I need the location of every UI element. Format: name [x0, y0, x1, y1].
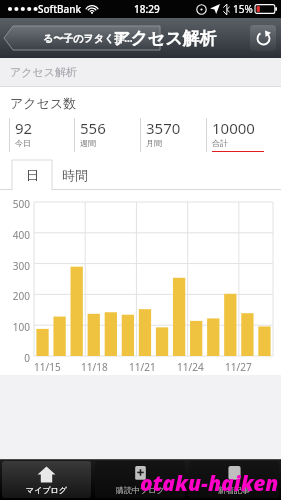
staticText: 18:29	[134, 2, 160, 16]
staticText: る〜子のヲタく拝...	[43, 31, 133, 45]
staticText: アクセス数	[10, 95, 77, 111]
staticText: 10000	[212, 118, 255, 138]
button[interactable]: 購読中ブログ	[95, 461, 185, 498]
button[interactable]: 10000	[212, 118, 264, 152]
staticText: 500	[2, 197, 30, 211]
staticText: 時間	[62, 167, 88, 183]
staticText: 0	[2, 351, 30, 365]
staticText: 400	[2, 228, 30, 242]
staticText: 300	[2, 259, 30, 273]
button[interactable]: マイブログ	[2, 461, 91, 498]
staticText: 11/21	[129, 360, 177, 374]
staticText: 100	[2, 320, 30, 334]
staticText: 日	[26, 167, 39, 183]
staticText: 11/18	[81, 360, 129, 374]
staticText: アクセス解析	[113, 28, 217, 49]
staticText: アクセス解析	[10, 65, 78, 79]
button[interactable]: Refresh	[250, 25, 276, 51]
button[interactable]: 556	[80, 118, 106, 148]
staticText: 合計	[212, 138, 228, 148]
button[interactable]: 日	[12, 160, 52, 190]
button[interactable]: る〜子のヲタく拝...	[4, 26, 164, 50]
button[interactable]: 新着記事	[189, 461, 279, 498]
staticText: 200	[2, 289, 30, 303]
staticText: 週間	[80, 138, 96, 148]
staticText: 15%	[233, 2, 253, 16]
button[interactable]: 時間	[52, 160, 98, 190]
staticText: otaku-haiken	[140, 469, 279, 498]
staticText: 11/27	[225, 360, 273, 374]
staticText: 11/15	[34, 360, 81, 374]
staticText: SoftBank	[38, 2, 82, 16]
button[interactable]: 92	[15, 118, 33, 148]
staticText: 今日	[15, 138, 31, 148]
staticText: 新着記事	[218, 485, 250, 495]
staticText: 月間	[146, 138, 162, 148]
button[interactable]: 3570	[146, 118, 181, 148]
staticText: マイブログ	[26, 485, 67, 495]
staticText: 11/24	[177, 360, 225, 374]
staticText: 3570	[146, 118, 181, 138]
staticText: 556	[80, 118, 106, 138]
staticText: 92	[15, 118, 33, 138]
staticText: 購読中ブログ	[116, 485, 165, 495]
